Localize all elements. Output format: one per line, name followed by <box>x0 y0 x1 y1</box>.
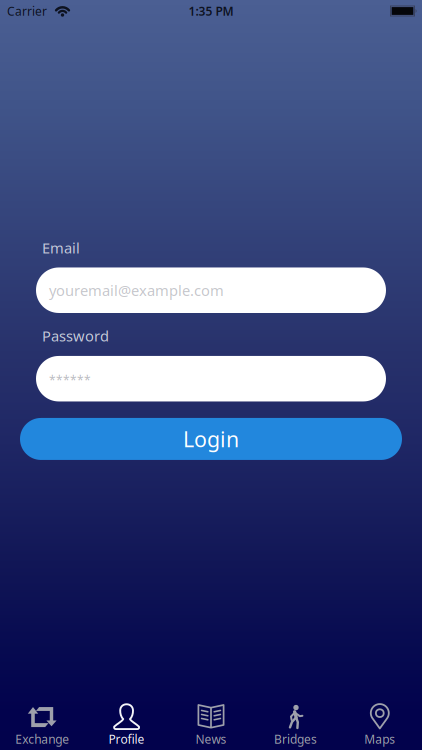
button[interactable]: Maps <box>338 703 422 750</box>
button[interactable]: Profile <box>84 703 169 750</box>
staticText: News <box>195 731 226 747</box>
staticText: Exchange <box>15 731 69 747</box>
staticText: Bridges <box>274 731 317 747</box>
button[interactable]: Password <box>36 356 386 401</box>
staticText: Carrier <box>7 3 47 19</box>
staticText: 1:35 PM <box>188 3 233 19</box>
staticText: Maps <box>364 731 395 747</box>
staticText: Login <box>183 425 239 453</box>
button[interactable]: News <box>169 703 253 750</box>
button[interactable]: Login <box>20 418 402 460</box>
button[interactable]: Exchange <box>0 703 84 750</box>
button[interactable]: Bridges <box>253 703 338 750</box>
staticText: youremail@example.com <box>49 280 224 300</box>
staticText: Email <box>42 238 80 257</box>
staticText: Password <box>42 326 109 345</box>
staticText: ****** <box>49 372 91 388</box>
button[interactable]: Email <box>36 267 386 313</box>
staticText: Profile <box>109 731 145 747</box>
